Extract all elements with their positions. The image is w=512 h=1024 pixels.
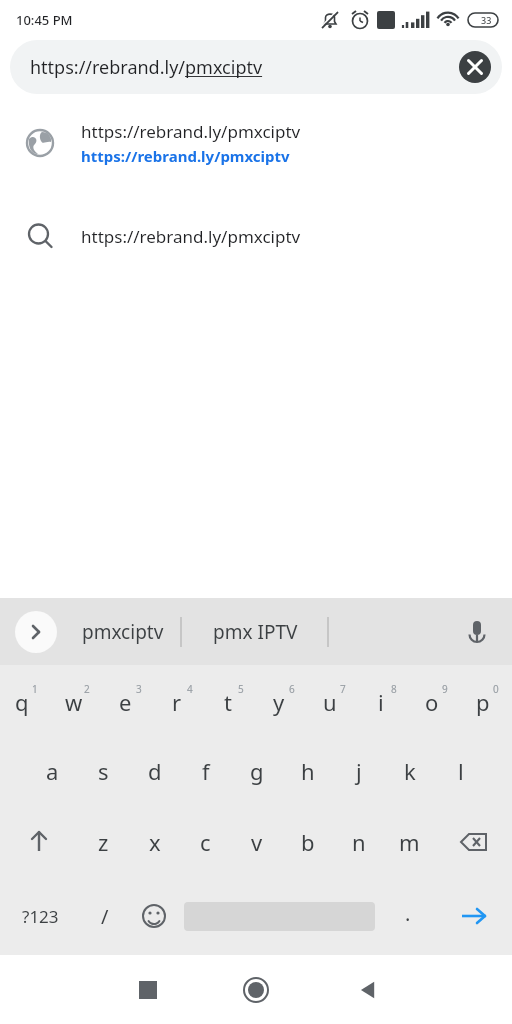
button[interactable]: / [81,877,128,955]
button[interactable]: https://rebrand.ly/pmxciptv [0,112,512,174]
staticText: v [251,827,263,857]
staticText: . [405,900,411,927]
staticText: f [202,756,210,786]
button[interactable]: r [155,665,206,735]
staticText: h [301,756,315,786]
button[interactable]: g [231,735,282,806]
button[interactable]: Go [436,877,512,955]
button[interactable]: Back [346,968,390,1012]
staticText: https://rebrand.ly/pmxciptv [81,120,301,143]
staticText: z [98,827,109,857]
button[interactable]: z [78,806,129,877]
staticText: t [224,687,232,717]
staticText: j [356,756,362,786]
button[interactable]: c [180,806,231,877]
button[interactable]: . [379,877,436,955]
staticText: p [476,687,490,717]
staticText: / [101,903,109,930]
staticText: 8 [391,682,397,696]
button[interactable]: x [129,806,180,877]
button[interactable]: f [180,735,231,806]
staticText: w [65,687,83,717]
staticText: i [378,687,384,717]
staticText: s [98,756,109,786]
staticText: https://rebrand.ly/pmxciptv [81,225,301,248]
staticText: 2 [84,682,90,696]
staticText: e [119,687,132,717]
button[interactable]: m [384,806,435,877]
button[interactable]: https://rebrand.ly/pmxciptv [0,212,512,260]
button[interactable]: i [359,665,410,735]
button[interactable]: w [52,665,104,735]
button[interactable]: a [27,735,78,806]
staticText: https://rebrand.ly/pmxciptv [30,55,263,80]
staticText: q [15,687,29,717]
staticText: b [301,827,315,857]
button[interactable]: Recents [126,968,170,1012]
staticText: u [323,687,337,717]
staticText: 9 [442,682,448,696]
button[interactable]: l [435,735,486,806]
button[interactable]: d [129,735,180,806]
staticText: k [404,756,416,786]
button[interactable]: Home [232,966,280,1014]
staticText: m [399,827,420,857]
staticText: a [46,756,59,786]
button[interactable]: j [333,735,384,806]
staticText: c [200,827,211,857]
staticText: d [148,756,162,786]
staticText: 6 [289,682,295,696]
button[interactable]: pmxciptv [66,607,180,657]
button[interactable]: https://rebrand.ly/pmxciptv [10,40,502,94]
staticText: 3 [136,682,142,696]
staticText: pmxciptv [82,619,164,645]
staticText: n [352,827,366,857]
staticText: ?123 [22,905,59,928]
staticText: 0 [493,682,499,696]
staticText: 1 [32,682,38,696]
button[interactable]: q [0,665,52,735]
staticText: y [273,687,285,717]
button[interactable]: b [282,806,333,877]
button[interactable]: pmx IPTV [190,607,320,657]
button[interactable]: t [206,665,257,735]
button[interactable]: y [257,665,308,735]
staticText: g [250,756,264,786]
button[interactable]: u [308,665,359,735]
button[interactable]: s [78,735,129,806]
button[interactable]: o [410,665,461,735]
button[interactable]: Voice input [454,609,500,655]
staticText: 4 [187,682,193,696]
button[interactable]: h [282,735,333,806]
button[interactable]: e [104,665,155,735]
button[interactable]: k [384,735,435,806]
staticText: https://rebrand.ly/pmxciptv [81,146,290,166]
button[interactable]: Emoji [128,877,180,955]
button[interactable]: ?123 [0,877,81,955]
button[interactable]: v [231,806,282,877]
button[interactable]: Backspace [435,806,512,877]
button[interactable]: Clear [459,51,491,83]
staticText: 7 [340,682,346,696]
staticText: 33 [481,14,492,26]
staticText: r [172,687,182,717]
staticText: 5 [238,682,244,696]
staticText: l [458,756,464,786]
button[interactable]: More suggestions [15,611,57,653]
staticText: x [149,827,161,857]
staticText: 10:45 PM [16,11,73,29]
button[interactable]: n [333,806,384,877]
button[interactable]: p [461,665,512,735]
staticText: o [425,687,439,717]
staticText: pmx IPTV [213,619,298,645]
button[interactable]: Shift [0,806,78,877]
